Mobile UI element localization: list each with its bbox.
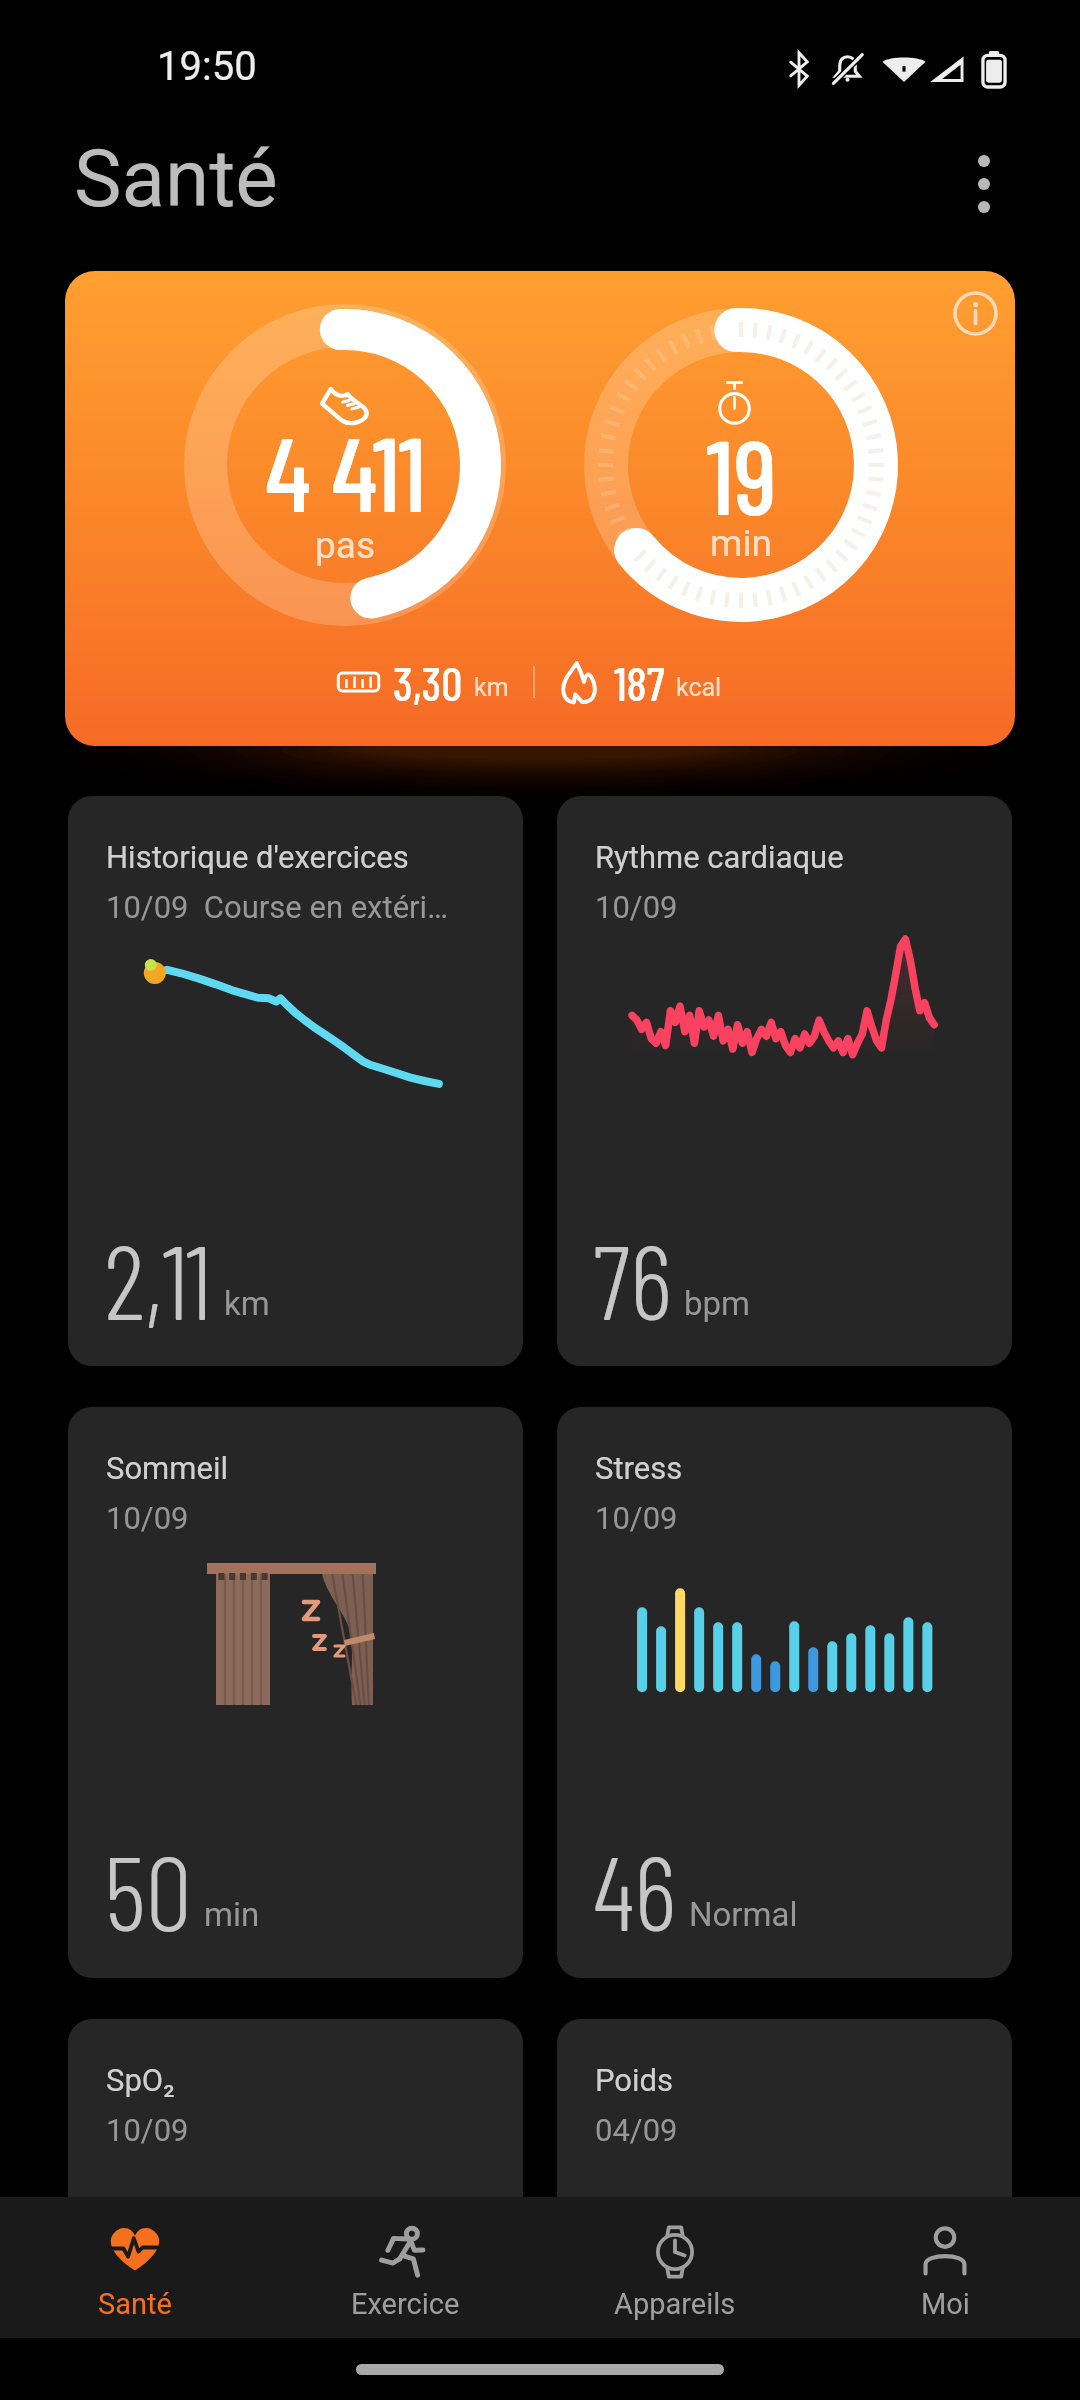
button[interactable]: Exercice — [270, 2197, 540, 2338]
button[interactable]: Appareils — [540, 2197, 810, 2338]
staticText: 46 — [593, 1827, 677, 1952]
staticText: 50 — [104, 1827, 192, 1952]
staticText: Moi — [921, 2287, 970, 2321]
staticText: Rythme cardiaque — [595, 839, 844, 875]
staticText: Sommeil — [106, 1450, 228, 1486]
staticText: Historique d'exercices — [106, 839, 409, 875]
staticText: 10/09 — [106, 2112, 189, 2148]
staticText: 10/09 — [595, 889, 678, 925]
staticText: min — [710, 522, 772, 565]
button[interactable]: Historique d'exercices — [68, 796, 523, 1366]
staticText: pas — [315, 524, 375, 567]
button[interactable]: SpO₂ — [68, 2019, 523, 2400]
staticText: Santé — [74, 132, 278, 226]
staticText: 187 — [614, 654, 665, 710]
staticText: km — [224, 1284, 270, 1323]
staticText: Appareils — [614, 2287, 736, 2321]
staticText: Stress — [595, 1450, 683, 1486]
staticText: 19:50 — [157, 43, 257, 90]
staticText: Normal — [689, 1895, 798, 1934]
staticText: 4 411 — [265, 408, 426, 518]
staticText: 04/09 — [595, 2112, 678, 2148]
button[interactable]: Rythme cardiaque — [557, 796, 1012, 1366]
button[interactable]: Sommeil — [68, 1407, 523, 1978]
staticText: Santé — [98, 2287, 172, 2321]
staticText: bpm — [684, 1284, 750, 1323]
staticText: km — [474, 673, 509, 702]
staticText: Poids — [595, 2062, 674, 2098]
staticText: kcal — [676, 673, 722, 702]
staticText: SpO₂ — [106, 2062, 175, 2098]
staticText: min — [204, 1895, 260, 1934]
button[interactable]: Stress — [557, 1407, 1012, 1978]
staticText: 19 — [706, 411, 777, 521]
staticText: Exercice — [351, 2287, 460, 2321]
staticText: 76 — [593, 1216, 672, 1341]
staticText: 10/09 — [595, 1500, 678, 1536]
button[interactable]: 4 411 — [65, 271, 1015, 746]
button[interactable]: Santé — [0, 2197, 270, 2338]
staticText: 3,30 — [393, 654, 463, 710]
staticText: 10/09 — [106, 1500, 189, 1536]
button[interactable]: Information — [940, 278, 1010, 348]
button[interactable]: Poids — [557, 2019, 1012, 2400]
staticText: 2,11 — [104, 1216, 212, 1341]
staticText: 10/09 Course en extéri… — [106, 889, 448, 925]
button[interactable]: Moi — [810, 2197, 1080, 2338]
button[interactable]: More options — [942, 142, 1026, 226]
